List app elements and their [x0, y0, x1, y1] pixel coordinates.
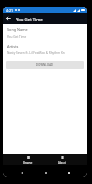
staticText: You Get Time — [7, 35, 27, 39]
button[interactable]: Browse — [11, 154, 45, 165]
staticText: Artists — [7, 44, 19, 49]
staticText: About — [58, 161, 66, 165]
staticText: You Get Time — [16, 16, 43, 22]
staticText: Nasty Seven ft. Lil FeatRox & Rhythm Kn — [7, 51, 65, 55]
button[interactable]: Home — [42, 169, 49, 176]
button[interactable]: DOWNLOAD — [6, 61, 84, 69]
staticText: 4:21 — [6, 8, 14, 13]
button[interactable]: About — [45, 154, 79, 165]
button[interactable]: Navigate up — [3, 13, 14, 24]
staticText: DOWNLOAD — [36, 63, 54, 67]
staticText: Song Name — [7, 27, 28, 32]
staticText: Browse — [23, 161, 33, 165]
button[interactable]: Recent apps — [65, 169, 72, 176]
button[interactable]: Back — [18, 169, 25, 176]
